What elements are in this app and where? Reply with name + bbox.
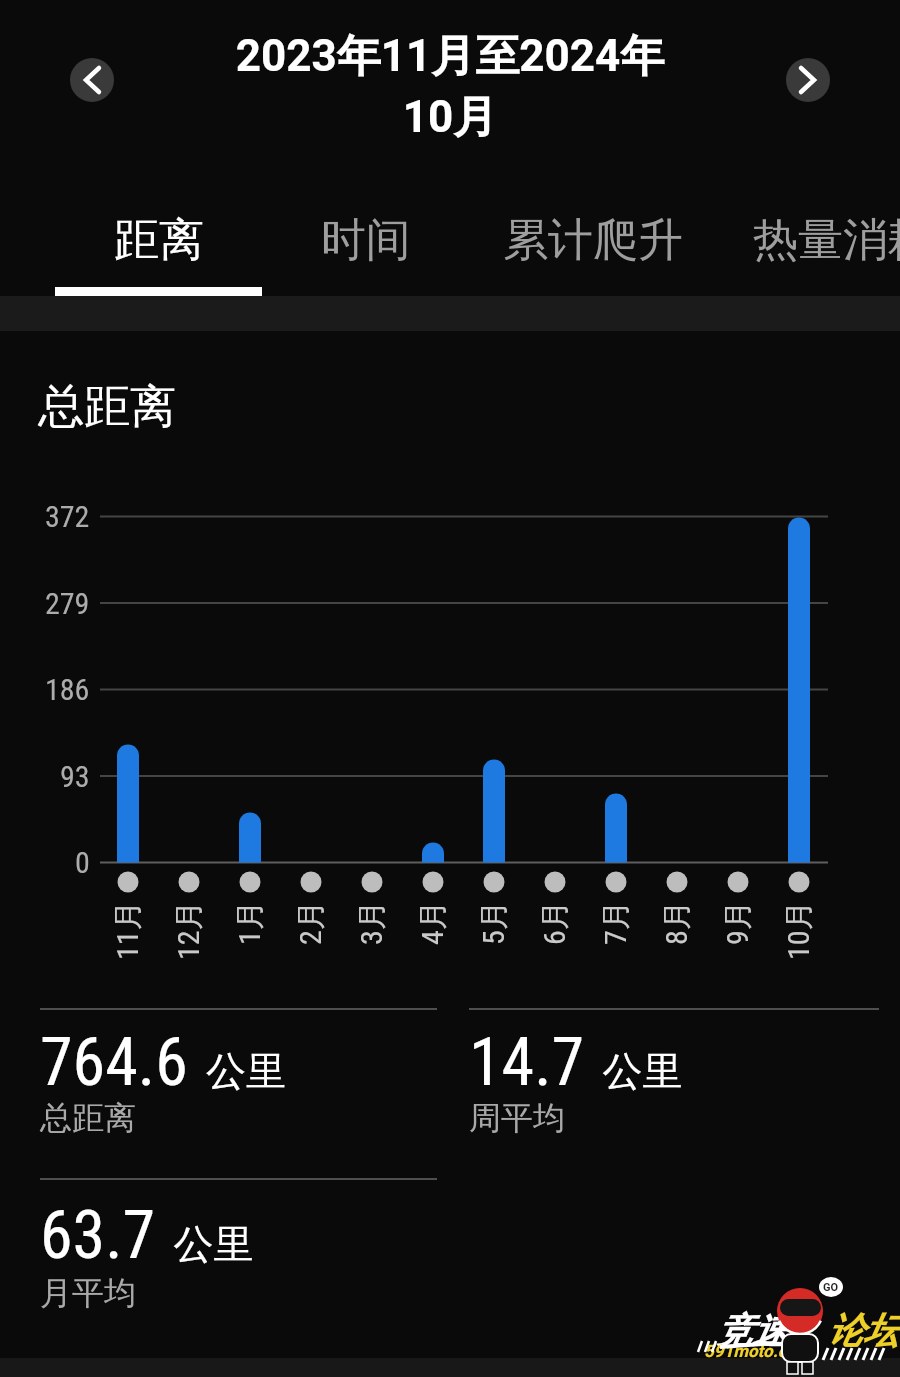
staticText: 月平均 [40, 1273, 136, 1313]
staticText: 时间 [321, 212, 411, 269]
staticText: 591moto.com [704, 1341, 811, 1361]
staticText: 论坛 [827, 1308, 899, 1353]
staticText: 总距离 [38, 378, 176, 436]
button[interactable]: 热量消耗 [717, 160, 900, 287]
staticText: 竞速 [716, 1308, 788, 1353]
staticText: 2023年11月至2024年 10月 [0, 29, 900, 145]
staticText: 764.6 公里 [40, 1024, 287, 1101]
staticText: 周平均 [469, 1098, 565, 1138]
button[interactable]: 距离 [55, 160, 262, 287]
staticText: 距离 [114, 212, 204, 269]
staticText: 63.7 公里 [40, 1197, 254, 1274]
button[interactable] [70, 58, 114, 102]
staticText: 累计爬升 [503, 212, 683, 269]
staticText: 14.7 公里 [469, 1024, 683, 1101]
button[interactable]: 累计爬升 [469, 160, 717, 287]
staticText: 总距离 [40, 1098, 136, 1138]
staticText: 热量消耗 [753, 212, 900, 269]
button[interactable] [786, 58, 830, 102]
button[interactable]: 时间 [262, 160, 469, 287]
